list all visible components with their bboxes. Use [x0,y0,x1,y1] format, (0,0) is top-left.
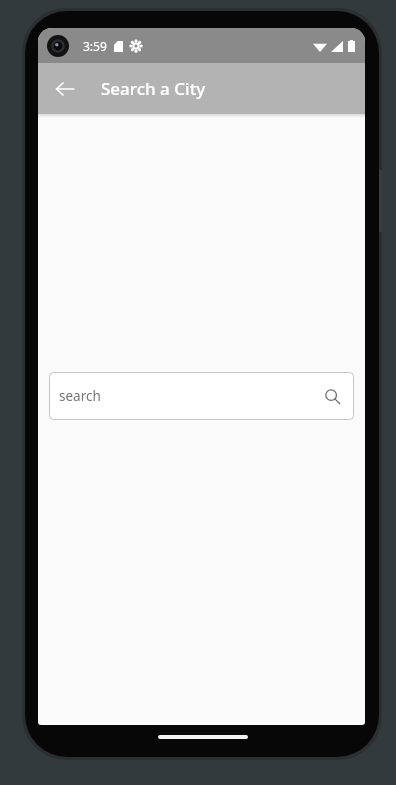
staticText: search [59,387,315,405]
staticText: 3:59 [83,38,107,54]
staticText: Search a City [101,77,206,100]
button[interactable]: search [49,372,354,420]
button[interactable]: Back [45,69,85,109]
button[interactable]: Search [315,379,349,413]
